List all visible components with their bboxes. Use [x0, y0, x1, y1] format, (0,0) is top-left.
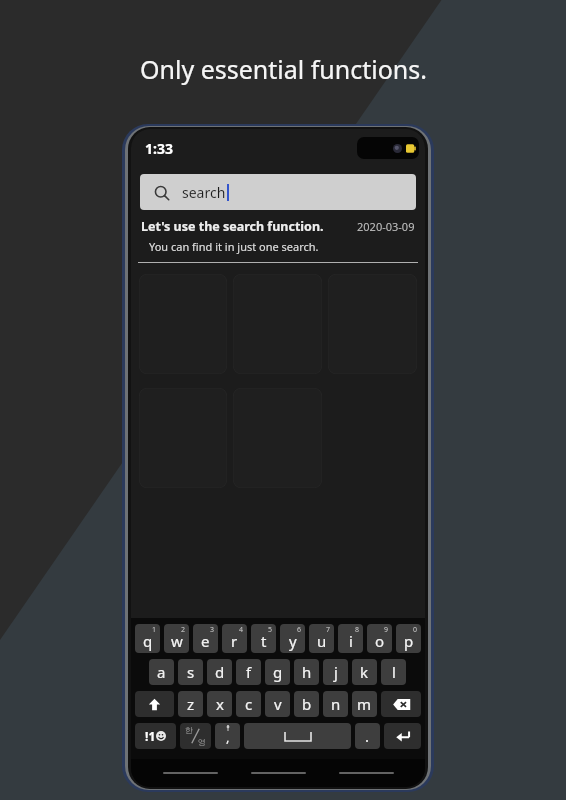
staticText: i: [349, 631, 353, 651]
button[interactable]: [337, 766, 395, 780]
staticText: 3: [210, 625, 215, 635]
button[interactable]: Space: [244, 723, 351, 749]
staticText: 5: [268, 625, 273, 635]
button[interactable]: k: [352, 659, 377, 685]
button[interactable]: 2: [164, 624, 189, 653]
staticText: h: [302, 662, 312, 682]
staticText: b: [302, 694, 312, 714]
staticText: c: [245, 694, 253, 714]
button[interactable]: j: [323, 659, 348, 685]
staticText: u: [317, 631, 327, 651]
staticText: y: [289, 631, 297, 651]
staticText: ,: [226, 728, 230, 746]
staticText: q: [143, 631, 153, 651]
staticText: 6: [297, 625, 302, 635]
button[interactable]: g: [265, 659, 290, 685]
button[interactable]: 3: [193, 624, 218, 653]
staticText: n: [331, 694, 341, 714]
staticText: 9: [384, 625, 389, 635]
staticText: You can find it in just one search.: [149, 239, 319, 254]
button[interactable]: 8: [338, 624, 363, 653]
staticText: r: [231, 631, 238, 651]
staticText: 4: [239, 625, 244, 635]
staticText: d: [215, 662, 225, 682]
staticText: j: [334, 662, 338, 682]
staticText: g: [273, 662, 283, 682]
button[interactable]: !1: [135, 723, 176, 749]
staticText: l: [392, 662, 396, 682]
button[interactable]: 6: [280, 624, 305, 653]
button[interactable]: 0: [396, 624, 421, 653]
staticText: v: [274, 694, 282, 714]
button[interactable]: s: [178, 659, 203, 685]
button[interactable]: Shift: [135, 691, 174, 717]
button[interactable]: search: [140, 174, 416, 210]
button[interactable]: ,: [215, 723, 240, 749]
staticText: 1:33: [145, 139, 173, 158]
button[interactable]: 5: [251, 624, 276, 653]
button[interactable]: l: [381, 659, 406, 685]
staticText: p: [404, 631, 414, 651]
staticText: 0: [413, 625, 418, 635]
button[interactable]: 4: [222, 624, 247, 653]
staticText: a: [157, 662, 166, 682]
staticText: s: [187, 662, 195, 682]
button[interactable]: a: [149, 659, 174, 685]
staticText: m: [357, 694, 372, 714]
staticText: x: [216, 694, 224, 714]
button[interactable]: .: [355, 723, 380, 749]
staticText: .: [365, 726, 370, 746]
staticText: 영: [198, 737, 206, 747]
staticText: 2020-03-09: [357, 219, 415, 234]
staticText: Only essential functions.: [140, 52, 427, 86]
staticText: !1: [145, 728, 156, 744]
button[interactable]: f: [236, 659, 261, 685]
button[interactable]: 1: [135, 624, 160, 653]
button[interactable]: 7: [309, 624, 334, 653]
button[interactable]: b: [294, 691, 319, 717]
button[interactable]: [249, 766, 307, 780]
button[interactable]: Backspace: [381, 691, 421, 717]
staticText: 7: [326, 625, 331, 635]
button[interactable]: Let's use the search function.: [138, 218, 418, 263]
staticText: z: [187, 694, 195, 714]
button[interactable]: c: [236, 691, 261, 717]
button[interactable]: x: [207, 691, 232, 717]
staticText: 한: [185, 725, 193, 735]
button[interactable]: v: [265, 691, 290, 717]
button[interactable]: [161, 766, 219, 780]
button[interactable]: n: [323, 691, 348, 717]
staticText: w: [171, 631, 183, 651]
staticText: 1: [152, 625, 157, 635]
staticText: search: [182, 183, 226, 202]
button[interactable]: m: [352, 691, 377, 717]
staticText: o: [375, 631, 385, 651]
button[interactable]: 9: [367, 624, 392, 653]
staticText: 2: [181, 625, 186, 635]
staticText: 8: [355, 625, 360, 635]
button[interactable]: Language: [180, 723, 211, 749]
staticText: f: [246, 662, 252, 682]
staticText: t: [261, 631, 267, 651]
staticText: k: [360, 662, 369, 682]
button[interactable]: d: [207, 659, 232, 685]
button[interactable]: h: [294, 659, 319, 685]
button[interactable]: z: [178, 691, 203, 717]
staticText: e: [201, 631, 210, 651]
button[interactable]: Enter: [384, 723, 421, 749]
staticText: Let's use the search function.: [141, 218, 324, 235]
